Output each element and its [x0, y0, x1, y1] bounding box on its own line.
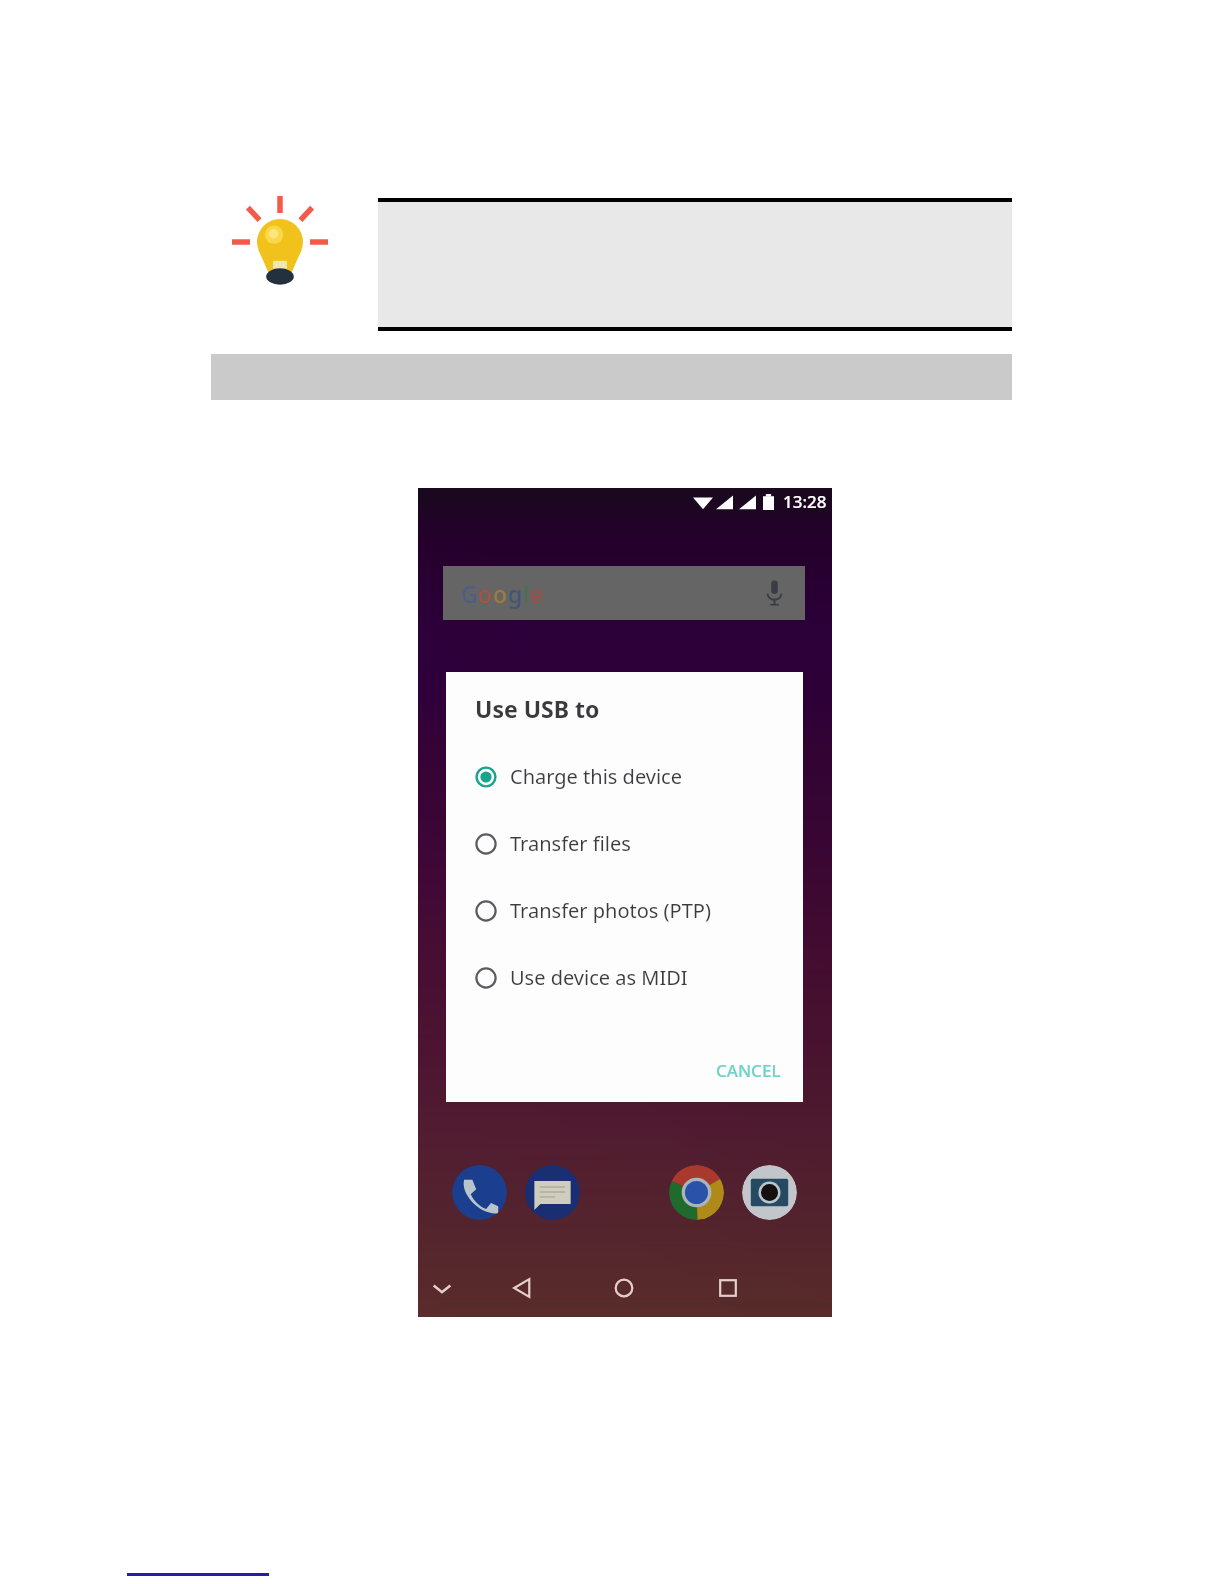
staticText: o	[478, 578, 493, 609]
staticText: Transfer photos (PTP)	[510, 897, 711, 924]
button[interactable]: Hide keyboard	[416, 1262, 468, 1314]
staticText: Use USB to	[475, 693, 600, 724]
staticText: CANCEL	[716, 1059, 781, 1082]
button[interactable]: Use device as MIDI	[446, 944, 803, 1011]
staticText: Charge this device	[510, 763, 682, 790]
button[interactable]: CANCEL	[708, 1054, 789, 1087]
button[interactable]: Back	[496, 1262, 548, 1314]
button[interactable]: Charge this device	[446, 743, 803, 810]
staticText: e	[530, 578, 544, 609]
staticText: Use device as MIDI	[510, 964, 688, 991]
button[interactable]: Phone	[452, 1165, 507, 1220]
button[interactable]: Transfer files	[446, 810, 803, 877]
button[interactable]: Transfer photos (PTP)	[446, 877, 803, 944]
staticText: Transfer files	[510, 830, 631, 857]
button[interactable]: Home	[598, 1262, 650, 1314]
staticText: 13:28	[783, 490, 827, 513]
staticText: G	[461, 578, 478, 609]
button[interactable]: Chrome	[669, 1165, 724, 1220]
button[interactable]: Google search	[443, 566, 805, 620]
staticText: l	[523, 578, 530, 609]
staticText: o	[493, 578, 508, 609]
button[interactable]: Recent apps	[702, 1262, 754, 1314]
staticText: g	[508, 578, 523, 609]
button[interactable]: Messages	[525, 1165, 580, 1220]
button[interactable]: Camera	[742, 1165, 797, 1220]
